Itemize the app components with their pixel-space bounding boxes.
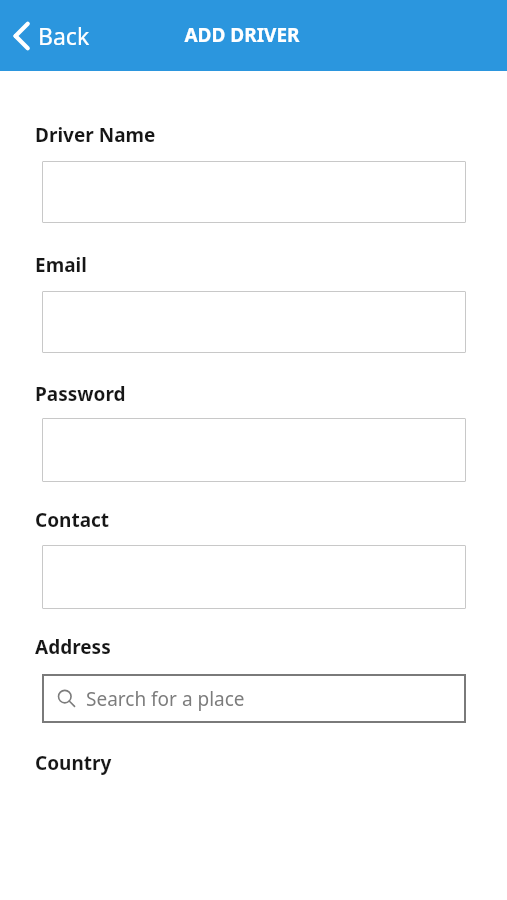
staticText: Address bbox=[35, 634, 111, 660]
staticText: Back bbox=[38, 20, 90, 51]
staticText: Driver Name bbox=[35, 122, 156, 148]
staticText: Password bbox=[35, 381, 126, 407]
button[interactable] bbox=[42, 161, 466, 223]
button[interactable]: Search for a place bbox=[42, 674, 466, 723]
staticText: Contact bbox=[35, 507, 110, 533]
button[interactable] bbox=[42, 291, 466, 353]
button[interactable]: Back bbox=[8, 16, 100, 55]
staticText: Search for a place bbox=[86, 686, 245, 712]
staticText: Email bbox=[35, 252, 87, 278]
button[interactable] bbox=[42, 545, 466, 609]
button[interactable] bbox=[42, 418, 466, 482]
staticText: ADD DRIVER bbox=[184, 22, 300, 48]
staticText: Country bbox=[35, 750, 112, 776]
